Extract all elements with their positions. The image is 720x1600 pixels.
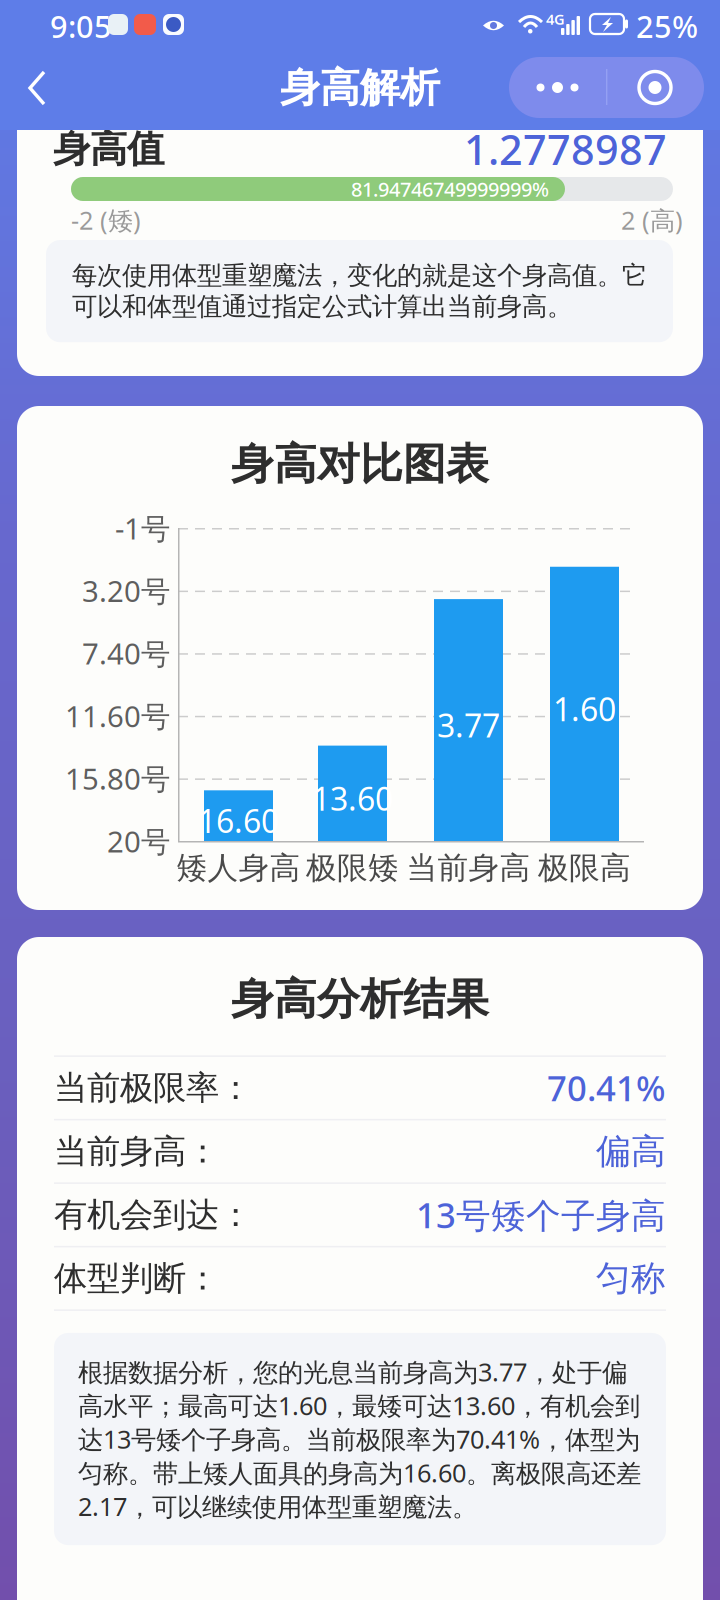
staticText: 有机会到达：	[54, 1194, 252, 1235]
staticText: 每次使用体型重塑魔法，变化的就是这个身高值。它可以和体型值通过指定公式计算出当前…	[72, 260, 647, 322]
staticText: 7.40号	[82, 634, 170, 673]
staticText: 11.60号	[65, 696, 170, 735]
staticText: 偏高	[596, 1130, 666, 1173]
staticText: 20号	[107, 821, 170, 860]
staticText: 70.41%	[547, 1065, 666, 1111]
staticText: 81.94746749999999%	[351, 176, 549, 202]
staticText: 3.77	[437, 704, 500, 746]
staticText: 9:05	[50, 6, 112, 46]
staticText: 3.20号	[82, 571, 170, 610]
staticText: 极限高	[538, 849, 631, 887]
staticText: -2 (矮)	[71, 203, 141, 237]
staticText: 身高对比图表	[231, 438, 489, 490]
staticText: 当前极限率：	[54, 1067, 252, 1108]
staticText: 16.60	[198, 799, 279, 842]
staticText: 4G	[546, 9, 565, 29]
staticText: 匀称	[596, 1257, 666, 1300]
staticText: 身高解析	[280, 63, 440, 112]
staticText: 当前身高	[406, 849, 530, 887]
staticText: 当前身高：	[54, 1131, 219, 1172]
staticText: 1.2778987	[464, 122, 667, 176]
staticText: 体型判断：	[54, 1258, 219, 1299]
staticText: 13号矮个子身高	[416, 1192, 666, 1238]
staticText: 13.60	[312, 777, 393, 820]
staticText: 根据数据分析，您的光息当前身高为3.77，处于偏高水平；最高可达1.60，最矮可…	[78, 1355, 641, 1523]
staticText: 1.60	[553, 688, 616, 730]
button[interactable]: Back	[0, 54, 78, 130]
staticText: 15.80号	[65, 759, 170, 798]
staticText: 25%	[636, 6, 698, 46]
staticText: 2 (高)	[621, 203, 683, 237]
staticText: 身高分析结果	[231, 973, 489, 1025]
button[interactable]: Close	[606, 57, 704, 118]
staticText: -1号	[115, 508, 170, 547]
staticText: 身高值	[53, 126, 164, 172]
staticText: 矮人身高	[176, 849, 300, 887]
button[interactable]: More options	[509, 57, 606, 118]
staticText: 极限矮	[306, 849, 399, 887]
